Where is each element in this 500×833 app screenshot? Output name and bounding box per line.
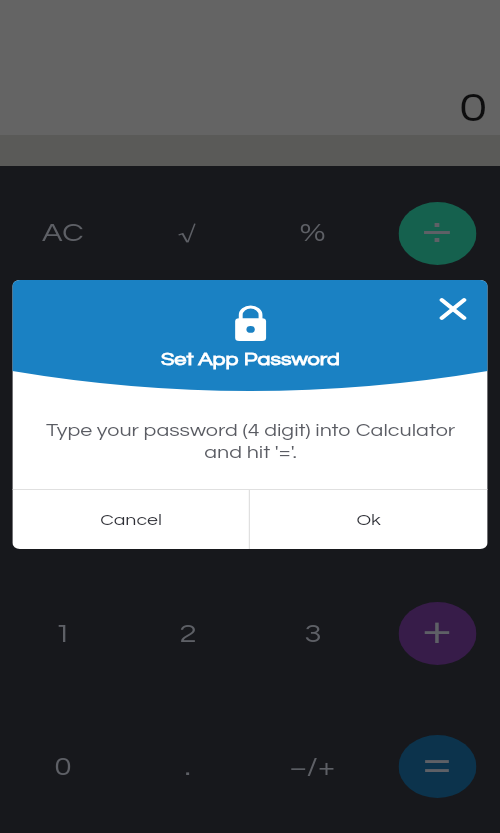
button[interactable]: 5 bbox=[125, 434, 250, 567]
staticText: 7 bbox=[54, 354, 72, 380]
button[interactable]: −/+ bbox=[250, 700, 375, 833]
staticText: 0 bbox=[459, 87, 488, 129]
staticText: 1 bbox=[54, 621, 72, 647]
staticText: 4 bbox=[54, 488, 72, 514]
button[interactable]: = bbox=[375, 700, 500, 833]
button[interactable]: − bbox=[375, 434, 500, 567]
staticText: Set App Password bbox=[161, 351, 340, 369]
staticText: −/+ bbox=[290, 754, 335, 780]
staticText: % bbox=[299, 220, 327, 246]
staticText: 0 bbox=[54, 754, 72, 780]
button[interactable]: Cancel bbox=[12, 490, 249, 549]
staticText: 3 bbox=[304, 621, 322, 647]
button[interactable]: 4 bbox=[0, 434, 125, 567]
button[interactable]: 7 bbox=[0, 300, 125, 434]
staticText: 5 bbox=[179, 488, 197, 514]
button[interactable]: % bbox=[250, 166, 375, 300]
staticText: ÷ bbox=[422, 207, 453, 252]
button[interactable]: 6 bbox=[250, 434, 375, 567]
button[interactable]: − bbox=[398, 469, 476, 532]
button[interactable]: × bbox=[375, 300, 500, 434]
staticText: + bbox=[422, 607, 453, 652]
staticText: − bbox=[422, 474, 453, 519]
staticText: × bbox=[422, 341, 453, 386]
button[interactable]: 0 bbox=[0, 700, 125, 833]
button[interactable]: + bbox=[375, 567, 500, 700]
button[interactable]: = bbox=[398, 735, 476, 798]
staticText: Type your password (4 digit) into Calcul… bbox=[46, 422, 455, 461]
staticText: 8 bbox=[179, 354, 197, 380]
button[interactable]: √ bbox=[125, 166, 250, 300]
button[interactable]: 3 bbox=[250, 567, 375, 700]
button[interactable]: × bbox=[398, 336, 476, 399]
button[interactable]: Ok bbox=[250, 490, 488, 549]
staticText: AC bbox=[42, 220, 84, 246]
staticText: = bbox=[422, 740, 453, 785]
staticText: 9 bbox=[304, 354, 322, 380]
button[interactable]: + bbox=[398, 602, 476, 665]
staticText: . bbox=[184, 754, 192, 780]
button[interactable]: 1 bbox=[0, 567, 125, 700]
button[interactable]: 2 bbox=[125, 567, 250, 700]
button[interactable]: AC bbox=[0, 166, 125, 300]
button[interactable]: ÷ bbox=[398, 202, 476, 265]
staticText: Cancel bbox=[100, 512, 162, 528]
button[interactable]: 8 bbox=[125, 300, 250, 434]
button[interactable]: ÷ bbox=[375, 166, 500, 300]
button[interactable]: 9 bbox=[250, 300, 375, 434]
staticText: 2 bbox=[179, 621, 197, 647]
staticText: Ok bbox=[356, 512, 381, 528]
staticText: 6 bbox=[304, 488, 322, 514]
button[interactable]: Close dialog bbox=[433, 293, 473, 325]
staticText: √ bbox=[178, 222, 197, 244]
